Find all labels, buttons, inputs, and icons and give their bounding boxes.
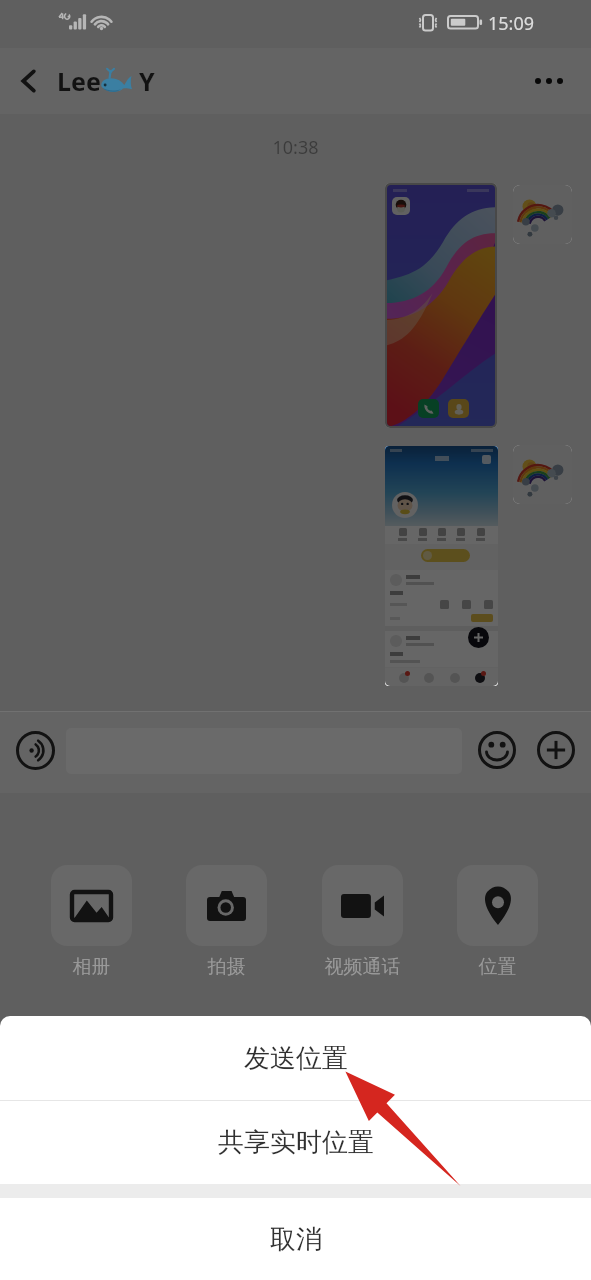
- button[interactable]: 拍摄: [186, 865, 267, 979]
- staticText: 15:09: [488, 11, 535, 36]
- staticText: 发送位置: [244, 1042, 348, 1075]
- button[interactable]: 相册: [51, 865, 132, 979]
- staticText: 拍摄: [186, 955, 267, 979]
- button[interactable]: Emoji: [472, 725, 521, 774]
- staticText: 共享实时位置: [218, 1126, 374, 1159]
- button[interactable]: Back: [8, 60, 50, 102]
- staticText: Y: [139, 64, 155, 98]
- staticText: 10:38: [0, 135, 591, 160]
- button[interactable]: 取消: [0, 1198, 591, 1280]
- button[interactable]: Voice input: [10, 725, 61, 776]
- button[interactable]: 视频通话: [322, 865, 403, 979]
- staticText: 位置: [457, 955, 538, 979]
- staticText: 相册: [51, 955, 132, 979]
- staticText: 视频通话: [322, 955, 403, 979]
- button[interactable]: 共享实时位置: [0, 1101, 591, 1184]
- button[interactable]: 发送位置: [0, 1016, 591, 1100]
- button[interactable]: More options: [525, 57, 573, 105]
- staticText: 取消: [270, 1223, 322, 1256]
- button[interactable]: More actions: [531, 725, 580, 774]
- staticText: Lee: [57, 64, 101, 98]
- button[interactable]: 位置: [457, 865, 538, 979]
